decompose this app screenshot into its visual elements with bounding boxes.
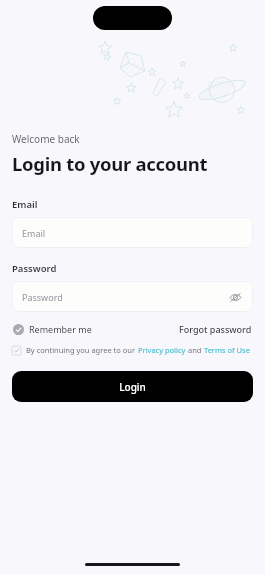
button[interactable]: Email: [12, 217, 253, 248]
staticText: and: [186, 345, 204, 355]
button[interactable]: Password: [12, 281, 253, 312]
staticText: Login: [119, 380, 146, 394]
staticText: Password: [12, 262, 57, 275]
staticText: Terms of Use: [204, 345, 250, 355]
staticText: Remember me: [29, 323, 92, 335]
staticText: Password: [22, 291, 63, 303]
button[interactable]: Remember me: [12, 321, 93, 337]
staticText: Email: [22, 227, 46, 239]
button[interactable]: Show password: [227, 289, 243, 305]
staticText: By continuing you agree to our: [26, 345, 138, 355]
staticText: Privacy policy: [138, 345, 186, 355]
staticText: Welcome back: [12, 132, 80, 146]
staticText: Login to your account: [12, 151, 208, 176]
button[interactable]: Forgot password: [178, 321, 253, 337]
staticText: Email: [12, 198, 38, 211]
button[interactable]: Login: [12, 371, 253, 402]
button[interactable]: By continuing you agree to our: [12, 345, 253, 355]
staticText: Forgot password: [179, 323, 252, 335]
